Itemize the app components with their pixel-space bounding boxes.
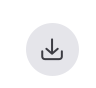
button[interactable]: Download [26,23,79,76]
